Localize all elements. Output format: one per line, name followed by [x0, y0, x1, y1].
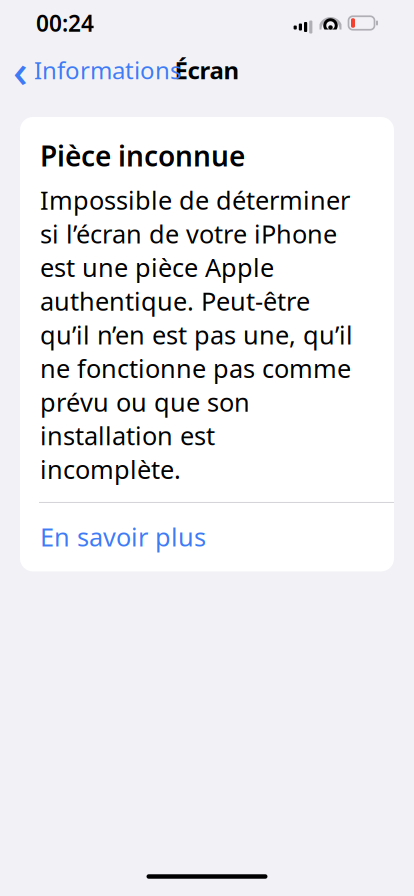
staticText: Écran [174, 54, 239, 86]
button[interactable]: En savoir plus [20, 503, 394, 571]
staticText: ‹ [13, 40, 28, 100]
staticText: Informations [34, 54, 181, 86]
button[interactable]: ‹ [4, 46, 191, 94]
staticText: Impossible de déterminer si l’écran de v… [40, 183, 353, 486]
staticText: En savoir plus [40, 520, 206, 553]
staticText: 00:24 [36, 8, 94, 38]
staticText: Pièce inconnue [40, 137, 245, 174]
